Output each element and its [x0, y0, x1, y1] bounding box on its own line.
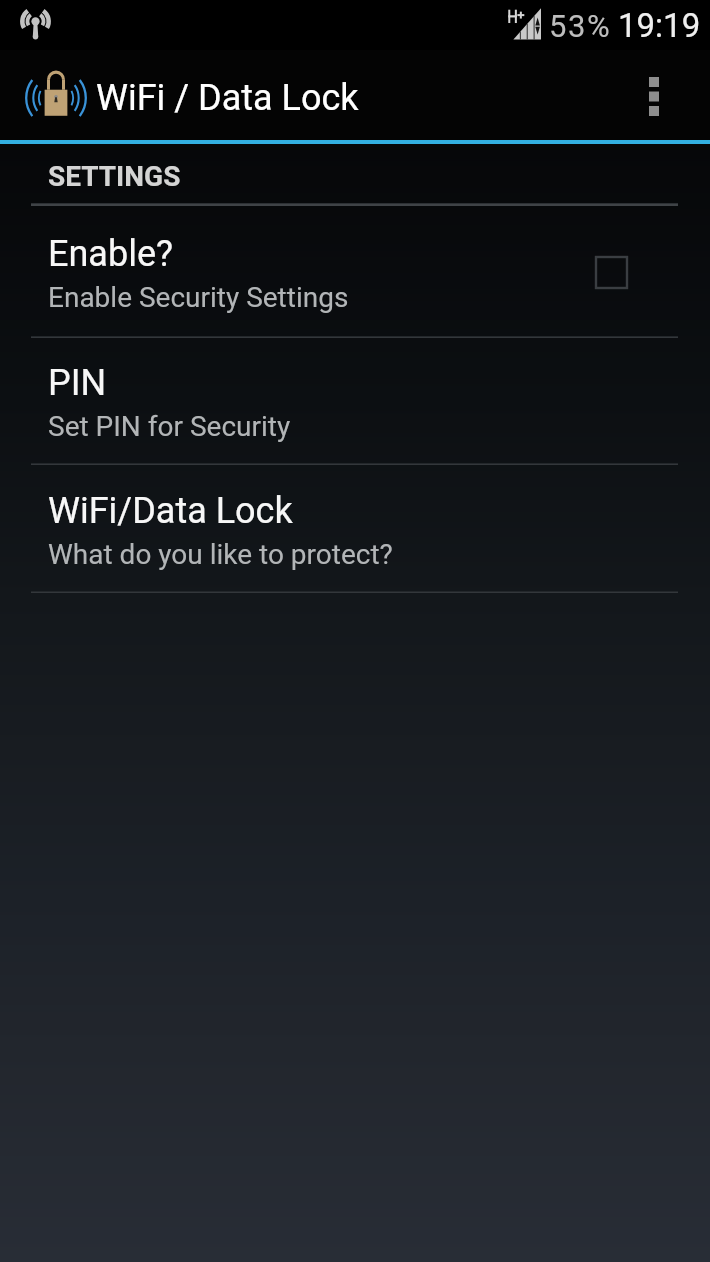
button[interactable]: PIN — [0, 338, 710, 465]
staticText: SETTINGS — [48, 160, 181, 193]
staticText: WiFi/Data Lock — [48, 490, 293, 532]
staticText: What do you like to protect? — [48, 538, 393, 571]
button[interactable]: WiFi/Data Lock — [0, 465, 710, 593]
button[interactable]: More options — [598, 50, 710, 140]
staticText: Enable Security Settings — [48, 281, 349, 314]
button[interactable]: Enable? — [0, 206, 710, 338]
staticText: Set PIN for Security — [48, 410, 291, 443]
staticText: 19:19 — [618, 6, 701, 45]
staticText: PIN — [48, 362, 107, 404]
staticText: 53% — [549, 8, 612, 44]
button[interactable]: Enable security settings checkbox — [596, 257, 627, 288]
staticText: Enable? — [48, 233, 173, 275]
staticText: WiFi / Data Lock — [96, 77, 359, 119]
